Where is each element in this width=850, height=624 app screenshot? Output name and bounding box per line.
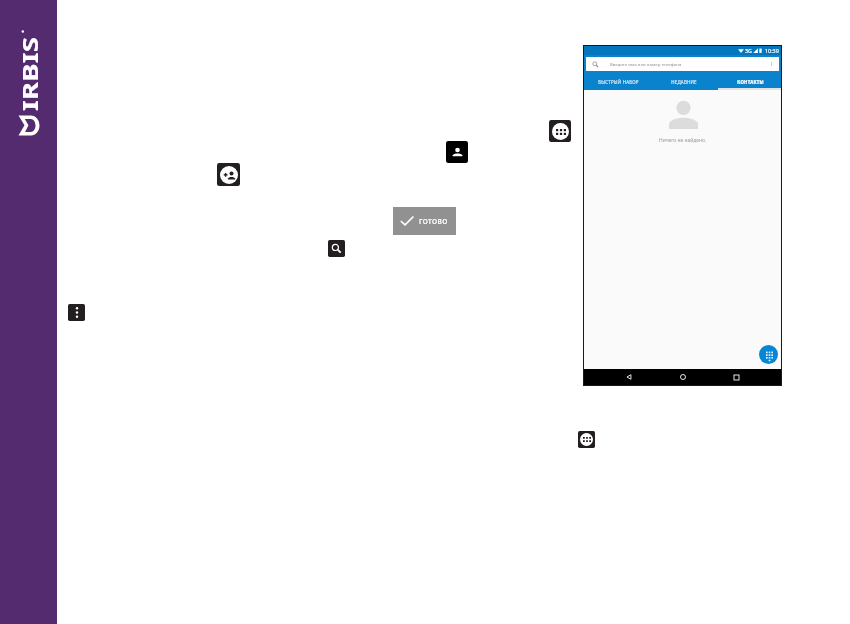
staticText: IRBIS	[15, 37, 44, 111]
button[interactable]: Recents	[728, 369, 744, 385]
button[interactable]: Add contact	[217, 163, 240, 186]
staticText: 3G	[745, 47, 752, 54]
button[interactable]: Contacts	[446, 141, 468, 163]
staticText: 10:39	[765, 47, 779, 54]
staticText: Ничего не найдено.	[659, 137, 707, 144]
button[interactable]: КОНТАКТЫ	[717, 79, 783, 85]
button[interactable]: Dialpad	[549, 120, 571, 142]
staticText: БЫСТРЫЙ НАБОР	[598, 79, 639, 85]
button[interactable]: Home	[675, 369, 691, 385]
button[interactable]: Overflow menu	[68, 304, 85, 321]
staticText: ГОТОВО	[419, 217, 448, 226]
button[interactable]: Search	[328, 240, 345, 257]
staticText: Введите имя или номер телефона	[610, 61, 682, 67]
button[interactable]: Dialpad	[759, 345, 778, 364]
button[interactable]: НЕДАВНИЕ	[651, 79, 717, 85]
button[interactable]: БЫСТРЫЙ НАБОР	[586, 79, 651, 85]
button[interactable]: Dialpad	[578, 431, 595, 448]
button[interactable]: Back	[621, 369, 637, 385]
staticText: КОНТАКТЫ	[737, 79, 764, 85]
button[interactable]: ГОТОВО	[393, 207, 456, 235]
button[interactable]: Введите имя или номер телефона	[586, 57, 779, 71]
staticText: НЕДАВНИЕ	[671, 79, 697, 85]
